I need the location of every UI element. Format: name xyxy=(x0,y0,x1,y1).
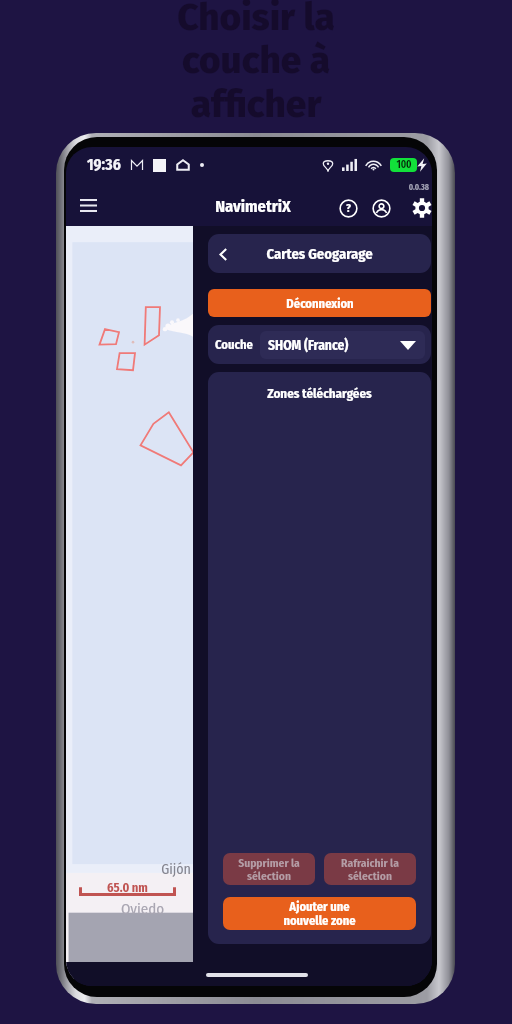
staticText: Gijón xyxy=(66,861,191,878)
button[interactable]: Retour xyxy=(208,234,431,273)
button[interactable]: Ajouter une nouvelle zone xyxy=(223,897,416,930)
staticText: NavimetriX xyxy=(215,197,291,217)
staticText: Cartes Geogarage xyxy=(266,245,373,263)
staticText: 100 xyxy=(396,159,412,171)
staticText: 65.0 nm xyxy=(79,880,176,895)
button[interactable]: Menu xyxy=(71,188,105,222)
staticText: Oviedo xyxy=(79,900,206,918)
button[interactable]: Parametres xyxy=(411,193,432,223)
staticText: Choisir la couche à afficher xyxy=(0,0,512,127)
staticText: Ajouter une nouvelle zone xyxy=(283,899,356,928)
staticText: 0.0.38 xyxy=(408,183,429,193)
staticText: Zones téléchargées xyxy=(267,386,372,402)
staticText: SHOM (France) xyxy=(268,337,349,353)
staticText: Rafraichir la sélection xyxy=(341,856,399,883)
other: Retour xyxy=(213,244,233,264)
button[interactable]: Rafraichir la sélection xyxy=(324,853,416,885)
staticText: Supprimer la sélection xyxy=(238,856,300,883)
button[interactable]: SHOM (France) xyxy=(260,331,425,359)
staticText: 19:36 xyxy=(87,156,121,175)
staticText: Déconnexion xyxy=(286,296,354,311)
button[interactable]: Supprimer la sélection xyxy=(223,853,315,885)
staticText: ? xyxy=(346,202,351,215)
button[interactable]: Aide xyxy=(333,193,363,223)
button[interactable]: Déconnexion xyxy=(208,289,431,317)
staticText: Couche xyxy=(215,337,253,352)
button[interactable]: Compte xyxy=(366,193,396,223)
